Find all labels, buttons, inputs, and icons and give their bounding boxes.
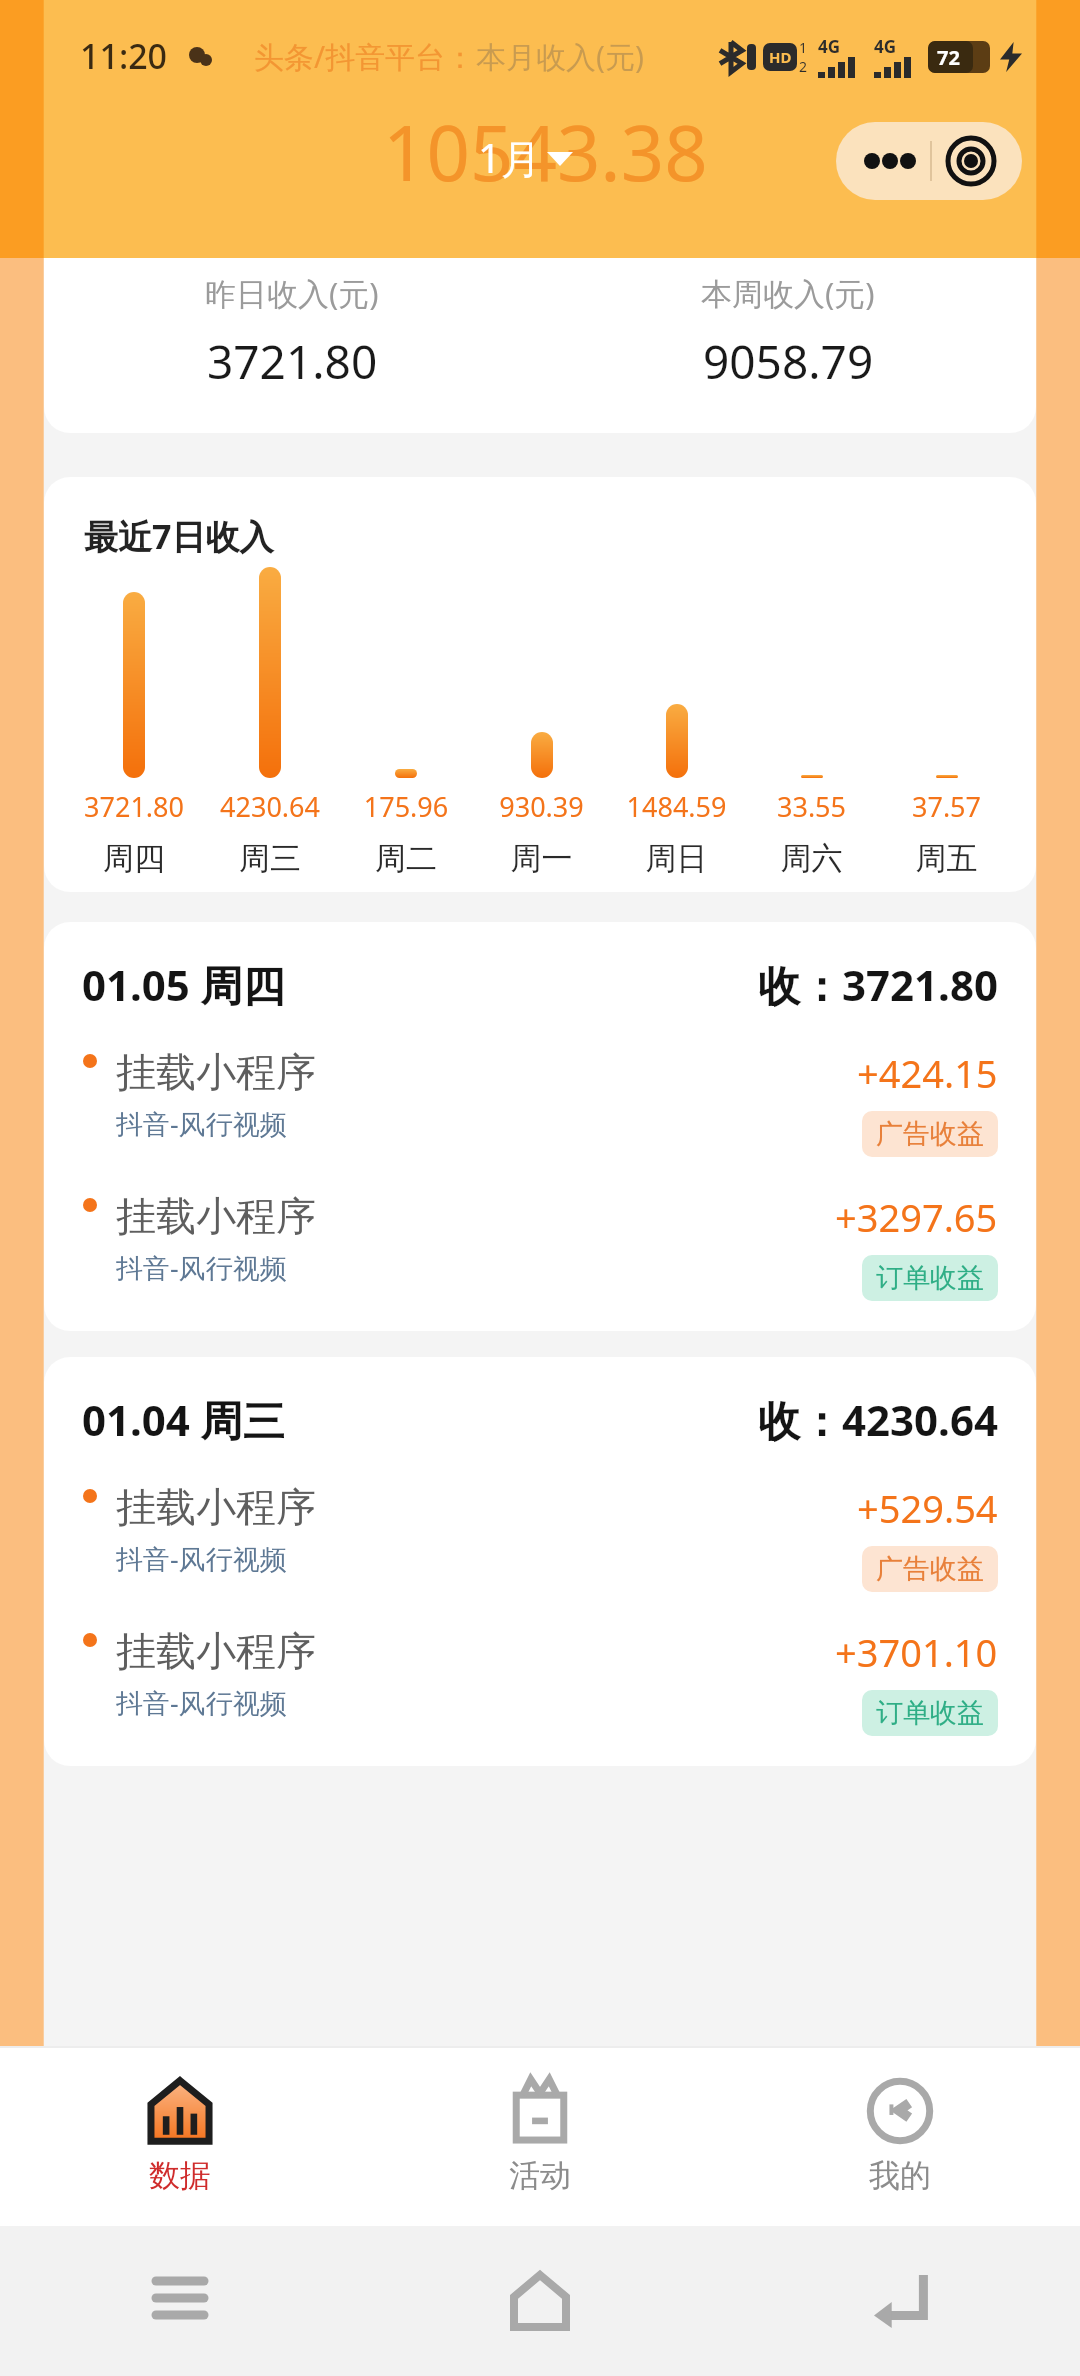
- staticText: 1484.59: [609, 788, 744, 825]
- staticText: +529.54: [857, 1482, 998, 1534]
- button[interactable]: Recents: [135, 2256, 225, 2346]
- button[interactable]: 挂载小程序: [82, 1191, 998, 1301]
- staticText: 930.39: [474, 788, 609, 825]
- staticText: 33.55: [744, 788, 879, 825]
- staticText: 抖音-风行视频: [116, 1249, 287, 1286]
- staticText: 数据: [149, 2156, 211, 2195]
- button[interactable]: 挂载小程序: [82, 1482, 998, 1592]
- button[interactable]: 昨日收入(元): [44, 258, 1036, 433]
- staticText: +3297.65: [835, 1191, 998, 1243]
- staticText: 抖音-风行视频: [116, 1684, 287, 1721]
- button[interactable]: 挂载小程序: [82, 1626, 998, 1736]
- button[interactable]: 01.05 周四: [44, 922, 1036, 1331]
- staticText: 我的: [869, 2156, 931, 2195]
- staticText: 4G: [874, 35, 897, 58]
- staticText: 广告收益: [876, 1117, 984, 1151]
- staticText: 抖音-风行视频: [116, 1105, 287, 1142]
- staticText: 175.96: [338, 788, 474, 825]
- staticText: 周日: [609, 839, 744, 878]
- staticText: 周二: [338, 839, 474, 878]
- button[interactable]: Back: [855, 2256, 945, 2346]
- staticText: 订单收益: [876, 1696, 984, 1730]
- staticText: 周六: [744, 839, 879, 878]
- button[interactable]: Mini program menu: [836, 122, 1022, 200]
- staticText: 2: [799, 57, 808, 76]
- staticText: 收：4230.64: [758, 1391, 998, 1448]
- staticText: 订单收益: [876, 1261, 984, 1295]
- staticText: 1月: [478, 130, 541, 185]
- staticText: 3721.80: [207, 330, 378, 393]
- staticText: 周五: [879, 839, 1014, 878]
- staticText: 01.04 周三: [82, 1391, 285, 1448]
- staticText: 4230.64: [202, 788, 338, 825]
- staticText: 活动: [509, 2156, 571, 2195]
- staticText: 广告收益: [876, 1552, 984, 1586]
- staticText: 挂载小程序: [116, 1482, 316, 1532]
- staticText: 72: [937, 44, 960, 71]
- staticText: 挂载小程序: [116, 1191, 316, 1241]
- button[interactable]: 挂载小程序: [82, 1047, 998, 1157]
- staticText: 挂载小程序: [116, 1626, 316, 1676]
- staticText: 本月收入(元): [476, 36, 644, 77]
- staticText: 4G: [818, 35, 841, 58]
- staticText: 周一: [474, 839, 609, 878]
- staticText: HD: [769, 47, 792, 67]
- staticText: 01.05 周四: [82, 956, 285, 1013]
- staticText: 3721.80: [66, 788, 202, 825]
- staticText: 头条/抖音平台：: [254, 36, 476, 77]
- staticText: 抖音-风行视频: [116, 1540, 287, 1577]
- button[interactable]: 01.04 周三: [44, 1357, 1036, 1766]
- staticText: +3701.10: [835, 1626, 998, 1678]
- staticText: 37.57: [879, 788, 1014, 825]
- staticText: 昨日收入(元): [205, 272, 379, 314]
- staticText: 收：3721.80: [758, 956, 998, 1013]
- staticText: 周四: [66, 839, 202, 878]
- staticText: 10543.38: [383, 100, 708, 204]
- button[interactable]: 最近7日收入: [44, 477, 1036, 892]
- staticText: 最近7日收入: [84, 513, 274, 559]
- button[interactable]: 我的: [720, 2046, 1080, 2226]
- staticText: 挂载小程序: [116, 1047, 316, 1097]
- staticText: 1: [799, 38, 808, 57]
- staticText: +424.15: [857, 1047, 998, 1099]
- button[interactable]: 数据: [0, 2046, 360, 2226]
- staticText: 周三: [202, 839, 338, 878]
- staticText: 11:20: [80, 33, 168, 79]
- staticText: 本周收入(元): [701, 272, 875, 314]
- button[interactable]: 活动: [360, 2046, 720, 2226]
- button[interactable]: Home: [495, 2256, 585, 2346]
- staticText: 9058.79: [703, 330, 874, 393]
